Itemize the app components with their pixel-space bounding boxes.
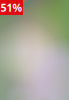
staticText: 51% [0,0,22,15]
button[interactable]: 51% [0,0,23,15]
